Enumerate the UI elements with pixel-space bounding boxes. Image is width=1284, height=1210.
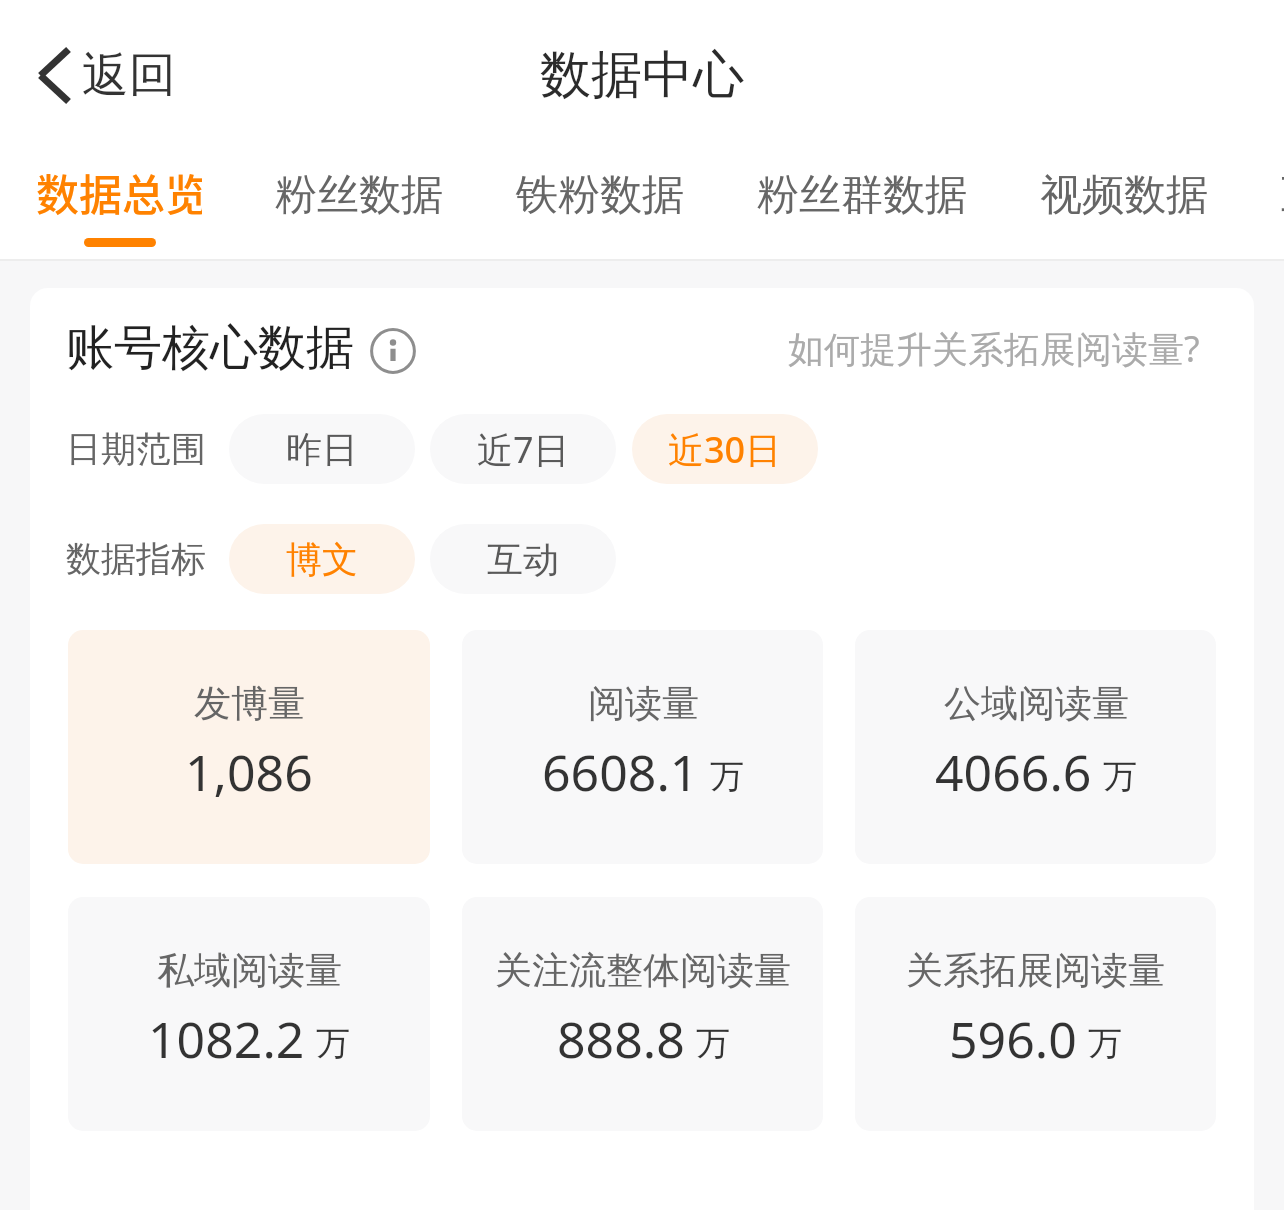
staticText: 数据中心 [540,43,744,107]
staticText: 如何提升关系拓展阅读量? [788,324,1200,373]
staticText: 万 [1088,1022,1122,1065]
staticText: 数据指标 [66,537,206,581]
staticText: 博文 [286,537,358,582]
button[interactable]: 视频数据 [1040,150,1208,238]
staticText: 1082.2 [148,1005,305,1073]
staticText: 万 [316,1022,350,1065]
button[interactable]: 关注流整体阅读量 [462,897,823,1131]
staticText: 视频数据 [1040,169,1208,222]
staticText: 账号核心数据 [66,318,354,378]
staticText: 互动 [487,537,559,582]
staticText: 6608.1 [542,738,699,806]
staticText: 私域阅读量 [157,947,342,994]
button[interactable]: 互动 [430,524,616,594]
staticText: 万 [696,1022,730,1065]
button[interactable]: 粉丝群数据 [757,150,967,238]
staticText: 1,086 [185,738,313,806]
button[interactable]: 近7日 [430,414,616,484]
staticText: 互动数据 [1281,169,1284,222]
staticText: 粉丝数据 [275,169,443,222]
button[interactable]: 近30日 [632,414,818,484]
staticText: 阅读量 [588,680,699,727]
staticText: 发博量 [194,680,305,727]
button[interactable]: 私域阅读量 [68,897,430,1131]
staticText: 万 [710,755,744,798]
button[interactable]: 说明 [370,328,416,374]
button[interactable]: 铁粉数据 [516,150,684,238]
staticText: 日期范围 [66,427,206,471]
button[interactable]: 粉丝数据 [275,150,443,238]
staticText: 近30日 [668,425,782,474]
button[interactable]: 昨日 [229,414,415,484]
button[interactable]: 发博量 [68,630,430,864]
button[interactable]: 数据总览 [36,150,202,247]
staticText: 数据总览 [36,161,202,216]
staticText: 888.8 [557,1005,685,1073]
staticText: 关注流整体阅读量 [495,947,791,994]
staticText: 昨日 [286,427,358,472]
button[interactable]: 返回 [32,36,182,115]
button[interactable]: 互动数据 [1281,150,1284,238]
staticText: 铁粉数据 [516,169,684,222]
button[interactable]: 博文 [229,524,415,594]
staticText: 近7日 [477,425,570,474]
button[interactable]: 阅读量 [462,630,823,864]
staticText: 返回 [82,46,176,105]
staticText: 粉丝群数据 [757,169,967,222]
staticText: 4066.6 [935,738,1092,806]
staticText: 公域阅读量 [944,680,1129,727]
staticText: 万 [1103,755,1137,798]
staticText: 596.0 [949,1005,1077,1073]
staticText: 关系拓展阅读量 [906,947,1165,994]
button[interactable]: 关系拓展阅读量 [855,897,1216,1131]
button[interactable]: 如何提升关系拓展阅读量? [788,324,1200,373]
button[interactable]: 公域阅读量 [855,630,1216,864]
